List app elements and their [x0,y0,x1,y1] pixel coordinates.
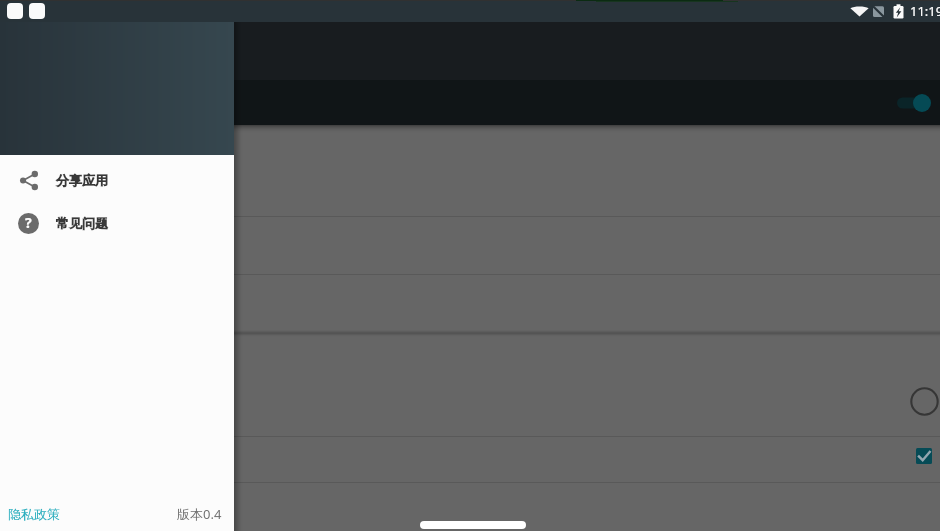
button[interactable]: ? [0,201,234,244]
button[interactable]: Toggle setting [897,93,928,113]
staticText: 常见问题 [56,215,108,231]
staticText: 分享应用 [56,172,108,188]
button[interactable]: List item 1 [0,125,940,216]
button[interactable]: List item 5 [0,437,940,482]
button[interactable]: List item 4 [0,337,940,436]
button[interactable]: 分享应用 [0,158,234,201]
staticText: 版本0.4 [177,505,222,523]
button[interactable]: Checkbox option [913,445,935,467]
staticText: 11:19 [910,2,940,20]
button[interactable]: List item 3 [0,275,940,331]
button[interactable]: List item 2 [0,217,940,274]
staticText: ? [25,213,32,232]
button[interactable]: Close navigation drawer [0,0,940,531]
staticText: 隐私政策 [8,506,60,522]
button[interactable]: List item 6 [0,483,940,531]
button[interactable]: Select option [908,385,940,418]
button[interactable]: 隐私政策 [8,506,60,522]
